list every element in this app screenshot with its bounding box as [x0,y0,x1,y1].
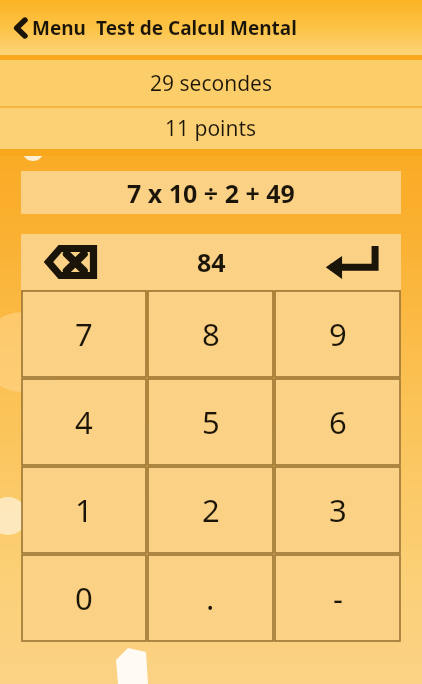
other: Back [12,16,30,40]
button[interactable]: 7 x 10 ÷ 2 + 49 [21,171,401,214]
staticText: 4 [75,401,93,443]
staticText: 11 points [165,114,257,143]
button[interactable]: 6 [275,379,400,465]
button[interactable]: 3 [275,467,400,553]
staticText: 2 [202,489,220,531]
staticText: 8 [202,313,220,355]
staticText: 9 [329,313,347,355]
button[interactable]: 5 [148,379,273,465]
button[interactable]: 11 points [0,108,422,149]
staticText: Menu [32,15,86,41]
button[interactable]: Back [8,9,90,47]
staticText: 1 [75,489,93,531]
staticText: Test de Calcul Mental [96,15,297,41]
button[interactable]: 7 [22,291,146,377]
staticText: 6 [329,401,347,443]
button[interactable]: 4 [22,379,146,465]
staticText: 7 x 10 ÷ 2 + 49 [127,176,295,210]
button[interactable]: - [275,555,400,641]
button[interactable]: 1 [22,467,146,553]
staticText: . [206,577,215,619]
button[interactable]: 2 [148,467,273,553]
staticText: 3 [329,489,347,531]
other: Backspace [44,244,98,280]
button[interactable]: 29 secondes [0,60,422,106]
button[interactable]: Backspace [21,234,121,290]
staticText: - [333,577,343,619]
button[interactable]: Enter [301,234,401,290]
staticText: 84 [197,245,226,279]
staticText: 29 secondes [150,69,272,98]
staticText: 5 [202,401,220,443]
staticText: 7 [75,313,93,355]
staticText: 0 [75,577,93,619]
button[interactable]: 0 [22,555,146,641]
other: Enter [323,243,379,281]
button[interactable]: 9 [275,291,400,377]
button[interactable]: . [148,555,273,641]
button[interactable]: 8 [148,291,273,377]
